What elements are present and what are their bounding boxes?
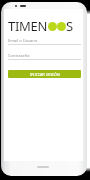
staticText: TIMEN [8,17,48,35]
staticText: Email o Usuario [8,38,38,43]
staticText: S [66,17,74,35]
button[interactable]: Contraseña [8,53,81,60]
staticText: INICIAR SESIÓN [30,72,60,77]
button[interactable]: INICIAR SESIÓN [8,70,81,78]
staticText: Contraseña [8,53,30,58]
button[interactable]: Email o Usuario [8,38,81,45]
